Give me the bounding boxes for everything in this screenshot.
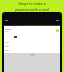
button[interactable]	[5, 40, 59, 44]
button[interactable]	[5, 44, 59, 48]
button[interactable]	[5, 33, 59, 40]
staticText: Swipe to make a	[18, 1, 46, 6]
button[interactable]	[5, 48, 59, 52]
button[interactable]: Action	[30, 54, 35, 56]
staticText: payment with a card	[15, 7, 49, 12]
button[interactable]: Add card	[56, 29, 59, 32]
